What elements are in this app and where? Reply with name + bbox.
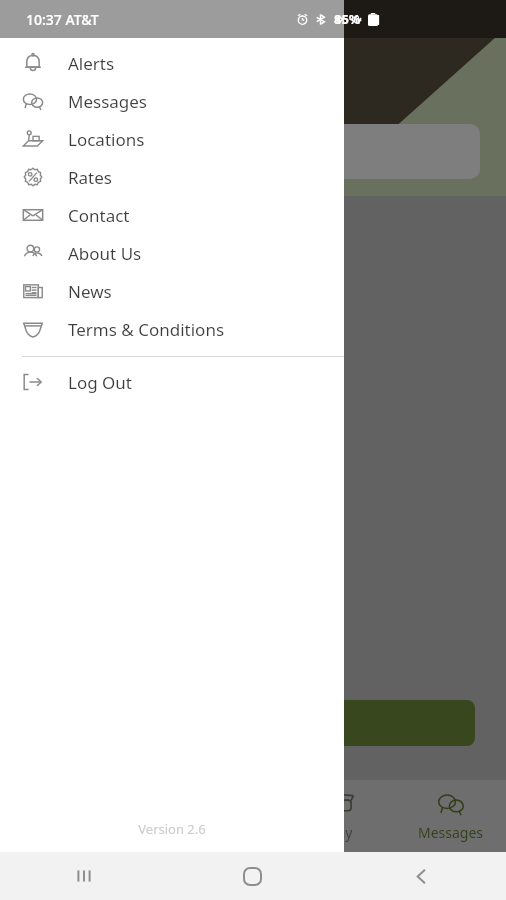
button[interactable]: Alerts <box>0 44 344 82</box>
staticText: Messages <box>418 823 484 842</box>
button[interactable]: Contact <box>0 196 344 234</box>
staticText: Pay <box>329 823 353 842</box>
button[interactable]: Locations <box>0 120 344 158</box>
staticText: Rates <box>68 166 112 189</box>
button[interactable]: Recent apps <box>0 852 168 900</box>
button[interactable]: Pay <box>286 780 396 852</box>
staticText: Alerts <box>68 52 115 75</box>
button[interactable]: News <box>0 272 344 310</box>
button[interactable] <box>200 700 475 746</box>
button[interactable]: Sent <box>200 124 480 179</box>
staticText: Terms & Conditions <box>68 318 225 341</box>
staticText: Contact <box>68 204 130 227</box>
staticText: 85% <box>334 10 361 28</box>
staticText: Log Out <box>68 371 132 394</box>
button[interactable]: Messages <box>0 82 344 120</box>
button[interactable]: Rates <box>0 158 344 196</box>
button[interactable]: About Us <box>0 234 344 272</box>
staticText: 10:37 AT&T <box>26 10 99 29</box>
staticText: Messages <box>68 90 148 113</box>
staticText: Locations <box>68 128 145 151</box>
button[interactable]: Terms & Conditions <box>0 310 344 348</box>
button[interactable]: Log Out <box>0 363 344 401</box>
staticText: About Us <box>68 242 142 265</box>
staticText: News <box>68 280 112 303</box>
button[interactable]: Home <box>168 852 337 900</box>
staticText: Version 2.6 <box>0 820 344 838</box>
button[interactable]: Messages <box>396 780 506 852</box>
button[interactable]: Back <box>337 852 506 900</box>
